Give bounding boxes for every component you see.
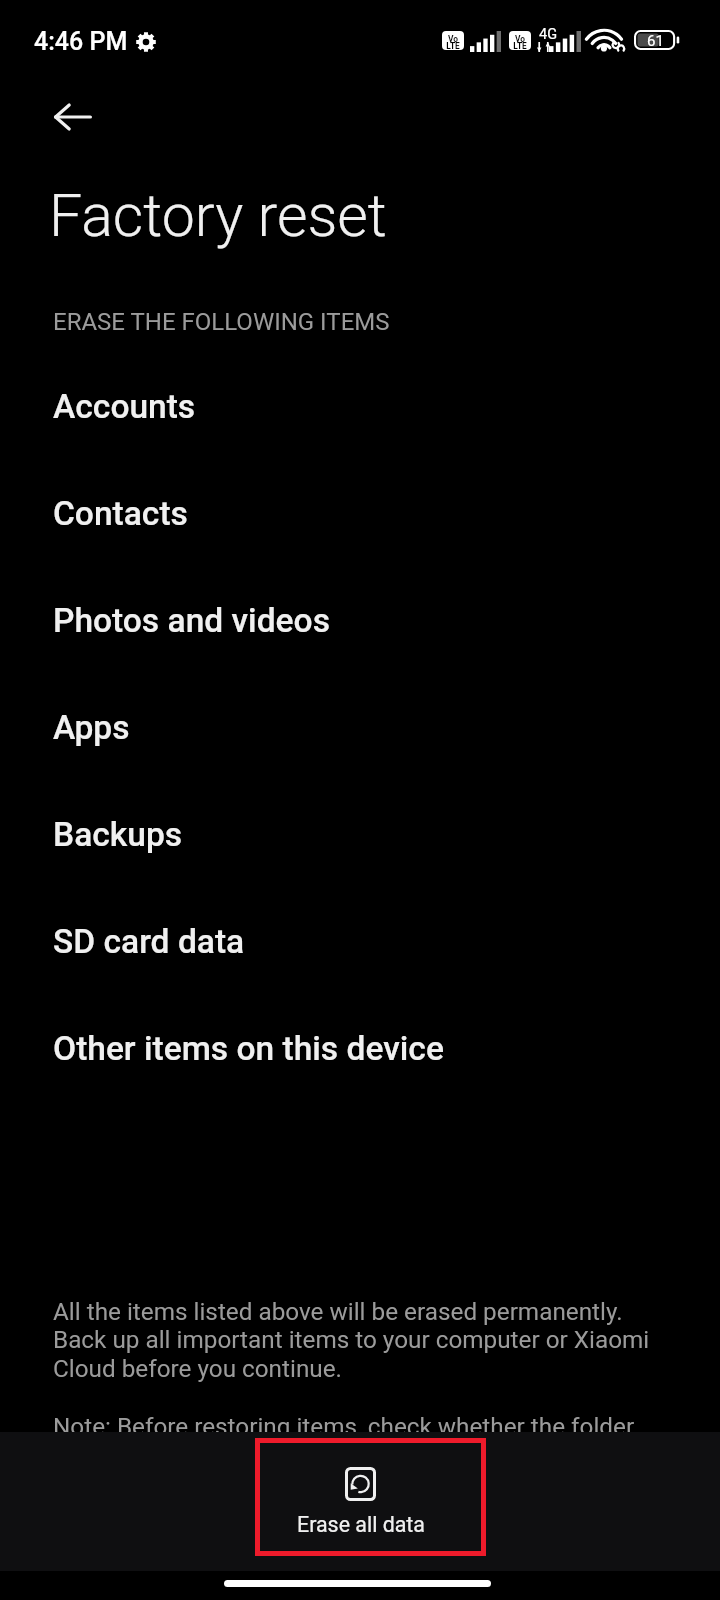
button[interactable]: Other items on this device [0, 995, 720, 1102]
button[interactable]: Backups [0, 781, 720, 888]
staticText: All the items listed above will be erase… [53, 1297, 669, 1382]
staticText: 4:46 PM [34, 27, 128, 56]
staticText: Vo [442, 34, 464, 44]
button[interactable]: Erase all data [246, 1444, 475, 1560]
button[interactable]: Accounts [0, 353, 720, 460]
staticText: 4G [539, 26, 558, 43]
staticText: Note: Before restoring items, check whet… [53, 1412, 669, 1468]
button[interactable]: Back [44, 88, 102, 146]
staticText: ERASE THE FOLLOWING ITEMS [53, 308, 390, 336]
staticText: Contacts [53, 494, 188, 533]
staticText: Factory reset [49, 181, 387, 250]
staticText: Accounts [53, 387, 196, 426]
staticText: Apps [53, 708, 130, 747]
staticText: SD card data [53, 922, 245, 961]
button[interactable]: Apps [0, 674, 720, 781]
button[interactable]: SD card data [0, 888, 720, 995]
staticText: 61 [647, 32, 664, 50]
staticText: Vo [509, 34, 531, 44]
staticText: Erase all data [297, 1512, 425, 1537]
staticText: Backups [53, 815, 183, 854]
staticText: LTE [509, 41, 531, 50]
staticText: Photos and videos [53, 601, 330, 640]
button[interactable]: Contacts [0, 460, 720, 567]
button[interactable]: Photos and videos [0, 567, 720, 674]
staticText: Other items on this device [53, 1029, 444, 1068]
staticText: LTE [442, 41, 464, 50]
